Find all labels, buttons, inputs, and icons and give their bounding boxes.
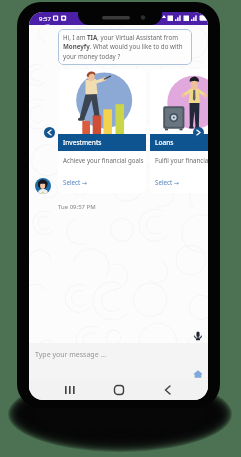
staticText: Achieve your financial goals [63, 156, 144, 164]
button[interactable]: Voice input [192, 330, 204, 342]
button[interactable]: Select → [155, 178, 179, 186]
staticText: Fulfil your financial needs [155, 156, 208, 164]
button[interactable]: Home [110, 381, 128, 399]
staticText: Loans [155, 138, 174, 147]
button[interactable]: Recents [60, 381, 78, 399]
button[interactable]: Next [193, 127, 204, 138]
button[interactable]: Select → [63, 178, 87, 186]
button[interactable]: Home [192, 368, 204, 380]
staticText: Hi, I am TIA, your Virtual Assistant fro… [63, 33, 187, 61]
button[interactable]: Back [159, 381, 177, 399]
button[interactable]: Investments [58, 69, 146, 193]
button[interactable]: Previous [44, 127, 55, 138]
button[interactable]: Loans [150, 69, 208, 193]
staticText: Investments [63, 138, 102, 147]
button[interactable]: Hi, I am TIA, your Virtual Assistant fro… [58, 29, 192, 65]
staticText: Tue 09:57 PM [58, 203, 96, 211]
staticText: 9:57 [39, 15, 51, 23]
button[interactable]: Type your message ... [35, 350, 107, 360]
